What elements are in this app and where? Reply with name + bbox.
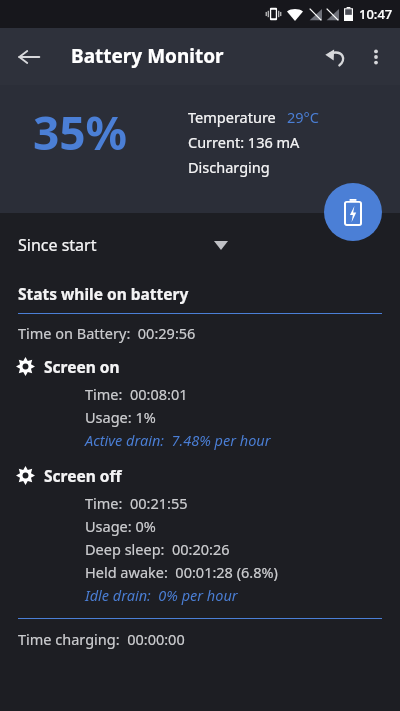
staticText: Deep sleep: 00:20:26 <box>85 539 230 559</box>
staticText: Usage: 1% <box>85 407 156 427</box>
staticText: Temperature <box>188 107 276 127</box>
staticText: Since start <box>18 234 97 256</box>
staticText: Time on Battery: 00:29:56 <box>18 323 196 343</box>
staticText: Time: 00:08:01 <box>85 384 188 404</box>
staticText: Active drain: 7.48% per hour <box>85 430 271 450</box>
staticText: Time: 00:21:55 <box>85 493 188 513</box>
staticText: 35% <box>33 101 128 164</box>
staticText: Stats while on battery <box>18 283 189 304</box>
staticText: 29°C <box>287 107 319 127</box>
button[interactable]: Screen off <box>16 463 400 487</box>
staticText: Idle drain: 0% per hour <box>85 585 238 605</box>
staticText: Time charging: 00:00:00 <box>18 629 185 649</box>
button[interactable]: Reset <box>314 36 356 78</box>
staticText: Usage: 0% <box>85 516 156 536</box>
button[interactable]: Screen on <box>16 354 400 378</box>
staticText: Screen off <box>44 465 122 486</box>
button[interactable]: More options <box>356 37 396 77</box>
staticText: Held awake: 00:01:28 (6.8%) <box>85 562 278 582</box>
staticText: 10:47 <box>359 5 393 23</box>
staticText: Discharging <box>188 157 270 177</box>
button[interactable]: Since start <box>18 226 228 264</box>
staticText: Screen on <box>44 356 120 377</box>
button[interactable]: Charge <box>324 183 382 241</box>
staticText: Battery Monitor <box>71 43 224 69</box>
button[interactable]: Back <box>8 36 50 78</box>
staticText: Current: 136 mA <box>188 132 300 152</box>
